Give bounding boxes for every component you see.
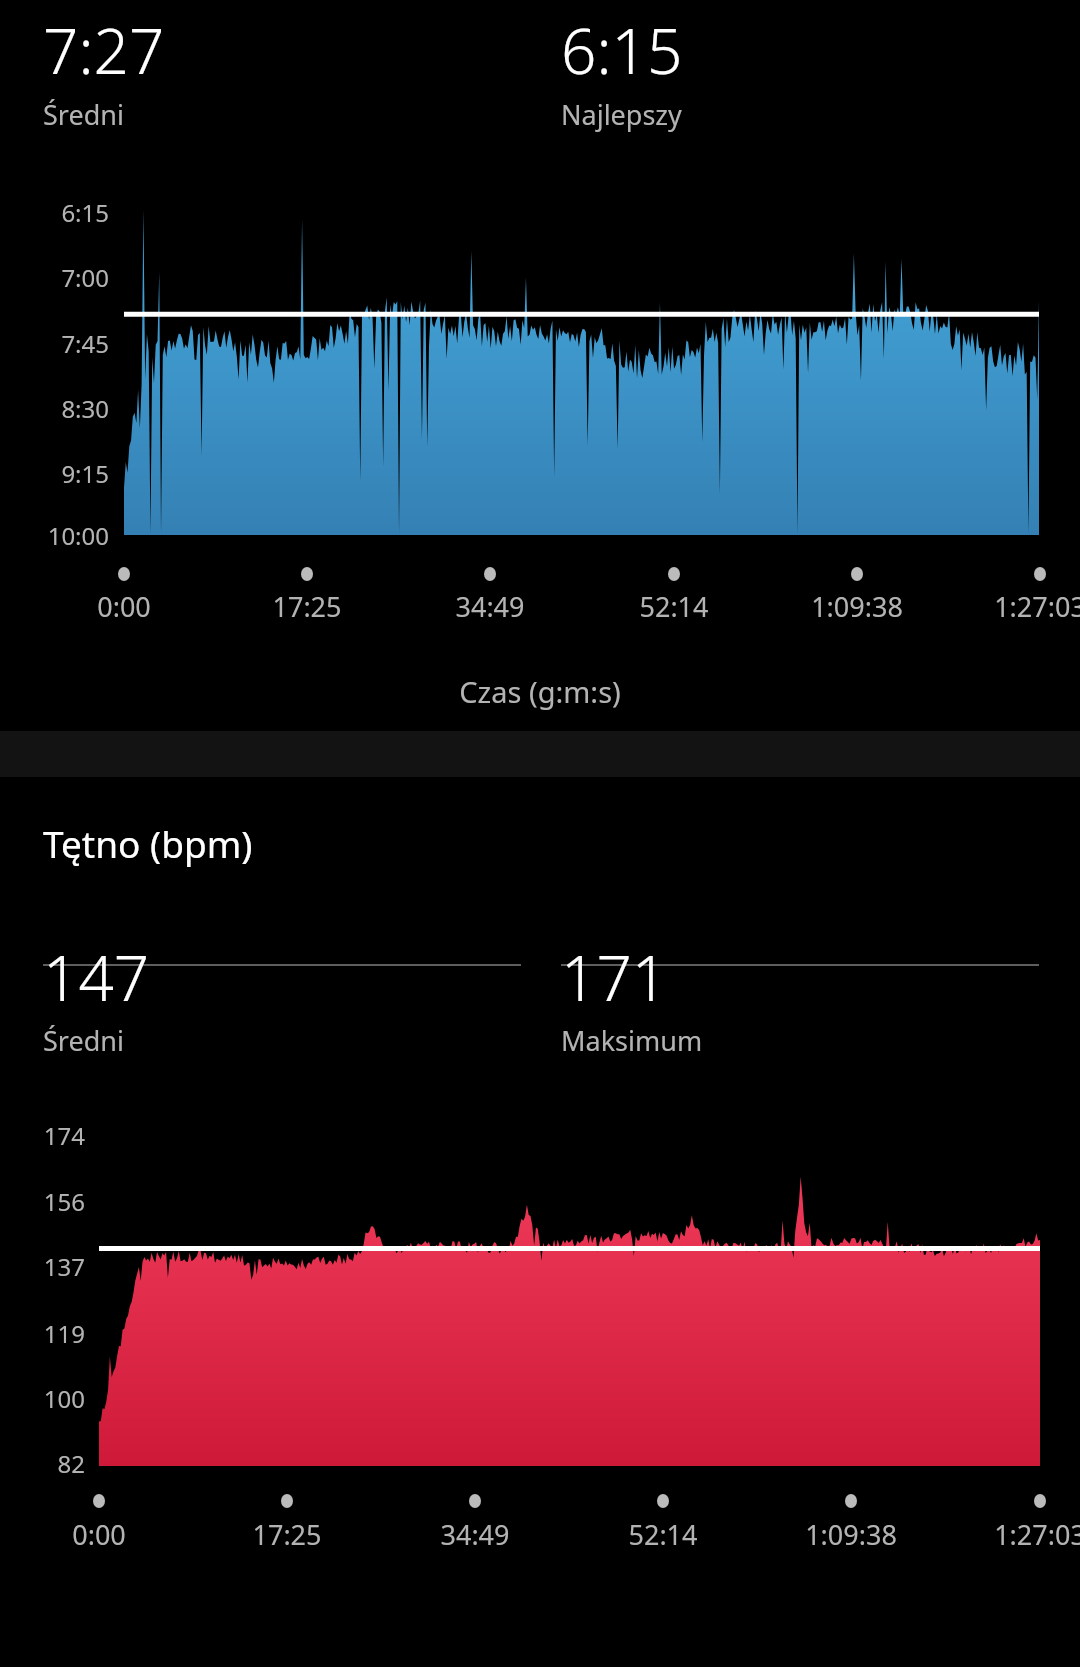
staticText: 1:09:38 bbox=[747, 588, 967, 625]
staticText: 1:09:38 bbox=[741, 1516, 961, 1553]
staticText: 7:00 bbox=[0, 261, 109, 294]
staticText: 82 bbox=[0, 1447, 85, 1480]
staticText: 34:49 bbox=[365, 1516, 585, 1553]
staticText: 0:00 bbox=[14, 588, 234, 625]
staticText: 52:14 bbox=[553, 1516, 773, 1553]
staticText: 6:15 bbox=[561, 8, 1018, 92]
button[interactable] bbox=[124, 203, 1039, 535]
staticText: 7:45 bbox=[0, 327, 109, 360]
staticText: Maksimum bbox=[561, 1022, 1018, 1059]
staticText: Tętno (bpm) bbox=[43, 818, 681, 868]
staticText: 17:25 bbox=[177, 1516, 397, 1553]
staticText: 9:15 bbox=[0, 457, 109, 490]
staticText: 147 bbox=[43, 935, 500, 1019]
staticText: 174 bbox=[0, 1119, 85, 1152]
staticText: 100 bbox=[0, 1382, 85, 1415]
staticText: 119 bbox=[0, 1317, 85, 1350]
staticText: 10:00 bbox=[0, 519, 109, 552]
staticText: Średni bbox=[43, 1022, 500, 1059]
staticText: 52:14 bbox=[564, 588, 784, 625]
staticText: 156 bbox=[0, 1185, 85, 1218]
staticText: Średni bbox=[43, 96, 500, 133]
staticText: 17:25 bbox=[197, 588, 417, 625]
staticText: 34:49 bbox=[380, 588, 600, 625]
staticText: 137 bbox=[0, 1250, 85, 1283]
staticText: 0:00 bbox=[0, 1516, 209, 1553]
staticText: 7:27 bbox=[43, 8, 500, 92]
staticText: Czas (g:m:s) bbox=[0, 672, 1080, 711]
staticText: 6:15 bbox=[0, 196, 109, 229]
staticText: 1:27:03 bbox=[930, 1516, 1080, 1553]
staticText: Najlepszy bbox=[561, 96, 1018, 133]
staticText: 1:27:03 bbox=[930, 588, 1080, 625]
button[interactable] bbox=[99, 1126, 1040, 1466]
staticText: 8:30 bbox=[0, 392, 109, 425]
staticText: 171 bbox=[561, 935, 1018, 1019]
